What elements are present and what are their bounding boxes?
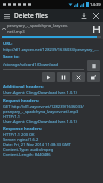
button[interactable]: Menu <box>3 12 11 20</box>
staticText: Content-Type: audio/mpeg <box>3 147 54 152</box>
button[interactable]: Close <box>91 11 100 20</box>
staticText: pesnyary_-_spadchyna_(zaycev. <box>7 23 69 29</box>
staticText: net).mp3 <box>7 29 25 35</box>
staticText: GET http://dl1.zaycev.net/128239/1636033… <box>3 104 84 109</box>
staticText: HTTP/1.1 <box>3 114 21 119</box>
button[interactable]: Start <box>42 72 55 82</box>
staticText: Delete files <box>14 11 48 20</box>
staticText: User-Agent: ClingyDownload (ver. 1.0.1) <box>3 90 77 95</box>
staticText: Save to: <box>3 54 20 60</box>
staticText: URL: <box>3 41 13 47</box>
button[interactable]: Download <box>79 11 88 20</box>
staticText: Server: nginx/1.6.2 <box>3 137 39 142</box>
button[interactable]: Save <box>92 25 101 34</box>
staticText: User-Agent: ClingyDownload (ver. 1.0.1) <box>3 119 77 124</box>
staticText: 14:39 <box>90 2 101 8</box>
staticText: Date: Fri, 21 Nov 2014 11:38:33 GMT <box>3 142 71 147</box>
staticText: pesnyary_-_spadchyna_(zaycev.net).mp3 <box>3 109 79 114</box>
staticText: Request headers: <box>3 98 40 104</box>
staticText: Response headers: <box>3 126 43 132</box>
staticText: Additional headers: <box>3 84 44 90</box>
staticText: HTTP/1.1 200 OK <box>3 132 35 137</box>
staticText: /storage/sdcard1/Download <box>3 62 59 68</box>
button[interactable]: Choose folder <box>87 60 100 71</box>
staticText: Content-Length: 8440486 <box>3 152 51 157</box>
button[interactable]: Open <box>87 72 100 82</box>
button[interactable]: Cancel <box>72 72 85 82</box>
button[interactable]: Pause <box>57 72 70 82</box>
staticText: http://dl1.zaycev.net/128239/1636033/pes… <box>3 47 100 52</box>
